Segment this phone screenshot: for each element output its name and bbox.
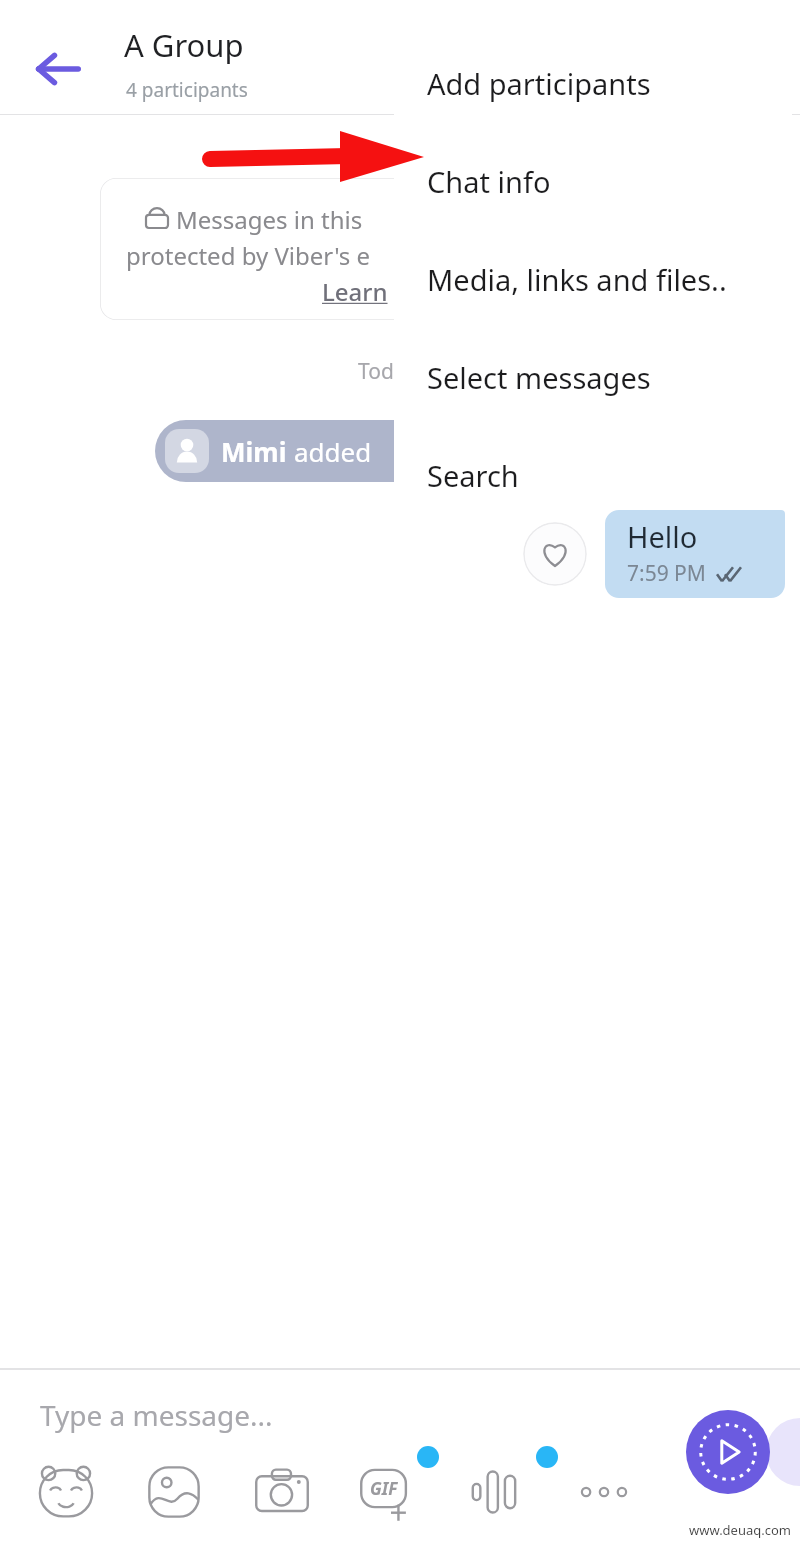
- button[interactable]: Messages in this: [100, 178, 540, 320]
- button[interactable]: Stickers: [28, 1454, 104, 1530]
- staticText: A Group: [124, 24, 244, 66]
- staticText: www.deuaq.com: [689, 1521, 792, 1539]
- staticText: Today: [358, 357, 417, 386]
- button[interactable]: Voice message: [458, 1454, 534, 1530]
- staticText: Search: [427, 456, 519, 495]
- button[interactable]: Like: [523, 522, 587, 586]
- button[interactable]: Add participants: [394, 43, 792, 123]
- button[interactable]: Media, links and files..: [394, 239, 792, 319]
- button[interactable]: More options: [566, 1454, 642, 1530]
- staticText: Hello: [627, 517, 698, 556]
- staticText: Add participants: [427, 64, 651, 103]
- button[interactable]: Select messages: [394, 337, 792, 417]
- staticText: Chat info: [427, 162, 551, 201]
- button[interactable]: GIF: [350, 1450, 432, 1532]
- staticText: Mimi: [221, 434, 294, 469]
- staticText: Messages in this: [176, 203, 363, 236]
- staticText: Media, links and files..: [427, 260, 727, 299]
- staticText: protected by Viber's e: [126, 239, 371, 272]
- button[interactable]: Chat info: [394, 141, 792, 221]
- button[interactable]: Send: [686, 1410, 770, 1494]
- staticText: GIF: [370, 1477, 398, 1500]
- button[interactable]: Hello: [605, 510, 785, 598]
- staticText: Learn: [322, 275, 388, 308]
- button[interactable]: Search: [394, 435, 792, 515]
- staticText: 7:59 PM: [627, 559, 706, 588]
- staticText: Select messages: [427, 358, 651, 397]
- button[interactable]: Back: [22, 33, 94, 105]
- staticText: Type a message...: [40, 1396, 273, 1434]
- button[interactable]: Camera: [244, 1454, 320, 1530]
- button[interactable]: Gallery: [136, 1454, 212, 1530]
- staticText: 4 participants: [126, 77, 248, 103]
- staticText: added: [294, 434, 372, 469]
- button[interactable]: Mimi: [155, 420, 555, 482]
